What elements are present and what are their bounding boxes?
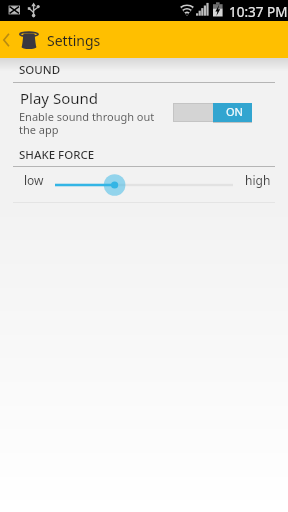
staticText: Enable sound through out the app — [19, 109, 157, 137]
staticText: Play Sound — [20, 88, 98, 108]
staticText: SHAKE FORCE — [19, 147, 95, 163]
button[interactable]: Play Sound toggle — [173, 103, 252, 123]
staticText: SOUND — [19, 62, 61, 78]
button[interactable]: Play Sound — [0, 83, 288, 136]
staticText: high — [245, 172, 271, 188]
staticText: low — [24, 172, 44, 188]
staticText: 10:37 PM — [229, 3, 288, 21]
staticText: ON — [226, 104, 243, 119]
staticText: Settings — [47, 31, 101, 50]
button[interactable]: Back — [0, 21, 15, 58]
button[interactable]: Shake force slider — [50, 173, 238, 197]
